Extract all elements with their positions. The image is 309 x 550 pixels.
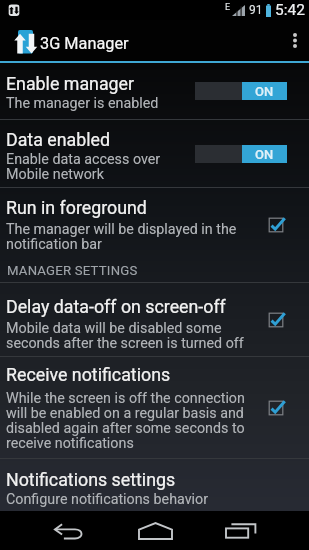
button[interactable]: More options	[281, 20, 309, 61]
staticText: Run in foreground	[6, 197, 147, 218]
staticText: Delay data-off on screen-off	[6, 296, 226, 317]
staticText: The manager will be displayed in the not…	[6, 221, 237, 253]
staticText: Configure notifications behavior	[6, 491, 209, 508]
button[interactable]: Delay data-off on screen-off	[0, 283, 309, 356]
staticText: Enable data access over Mobile network	[6, 151, 161, 183]
button[interactable]: Notifications settings	[0, 459, 309, 510]
staticText: MANAGER SETTINGS	[7, 263, 138, 278]
staticText: E	[225, 2, 231, 13]
staticText: Notifications settings	[6, 469, 176, 490]
staticText: Data enabled	[6, 129, 111, 150]
staticText: ON	[255, 147, 274, 162]
staticText: The manager is enabled	[6, 95, 159, 112]
staticText: ON	[255, 84, 274, 99]
button[interactable]: Receive notifications	[0, 357, 309, 458]
button[interactable]: Home	[112, 511, 199, 550]
button[interactable]: Data enabled	[0, 120, 309, 187]
button[interactable]: Recent apps	[197, 511, 285, 550]
staticText: 5:42	[275, 1, 305, 19]
button[interactable]: Enable manager	[0, 63, 309, 119]
staticText: 91	[249, 3, 263, 17]
button[interactable]: Back	[25, 511, 112, 550]
staticText: While the screen is off the connection w…	[6, 390, 245, 452]
button[interactable]: Run in foreground	[0, 188, 309, 262]
staticText: Mobile data will be disabled some second…	[6, 320, 244, 352]
staticText: 3G Manager	[40, 34, 129, 53]
staticText: Receive notifications	[6, 364, 171, 385]
staticText: Enable manager	[6, 73, 135, 94]
